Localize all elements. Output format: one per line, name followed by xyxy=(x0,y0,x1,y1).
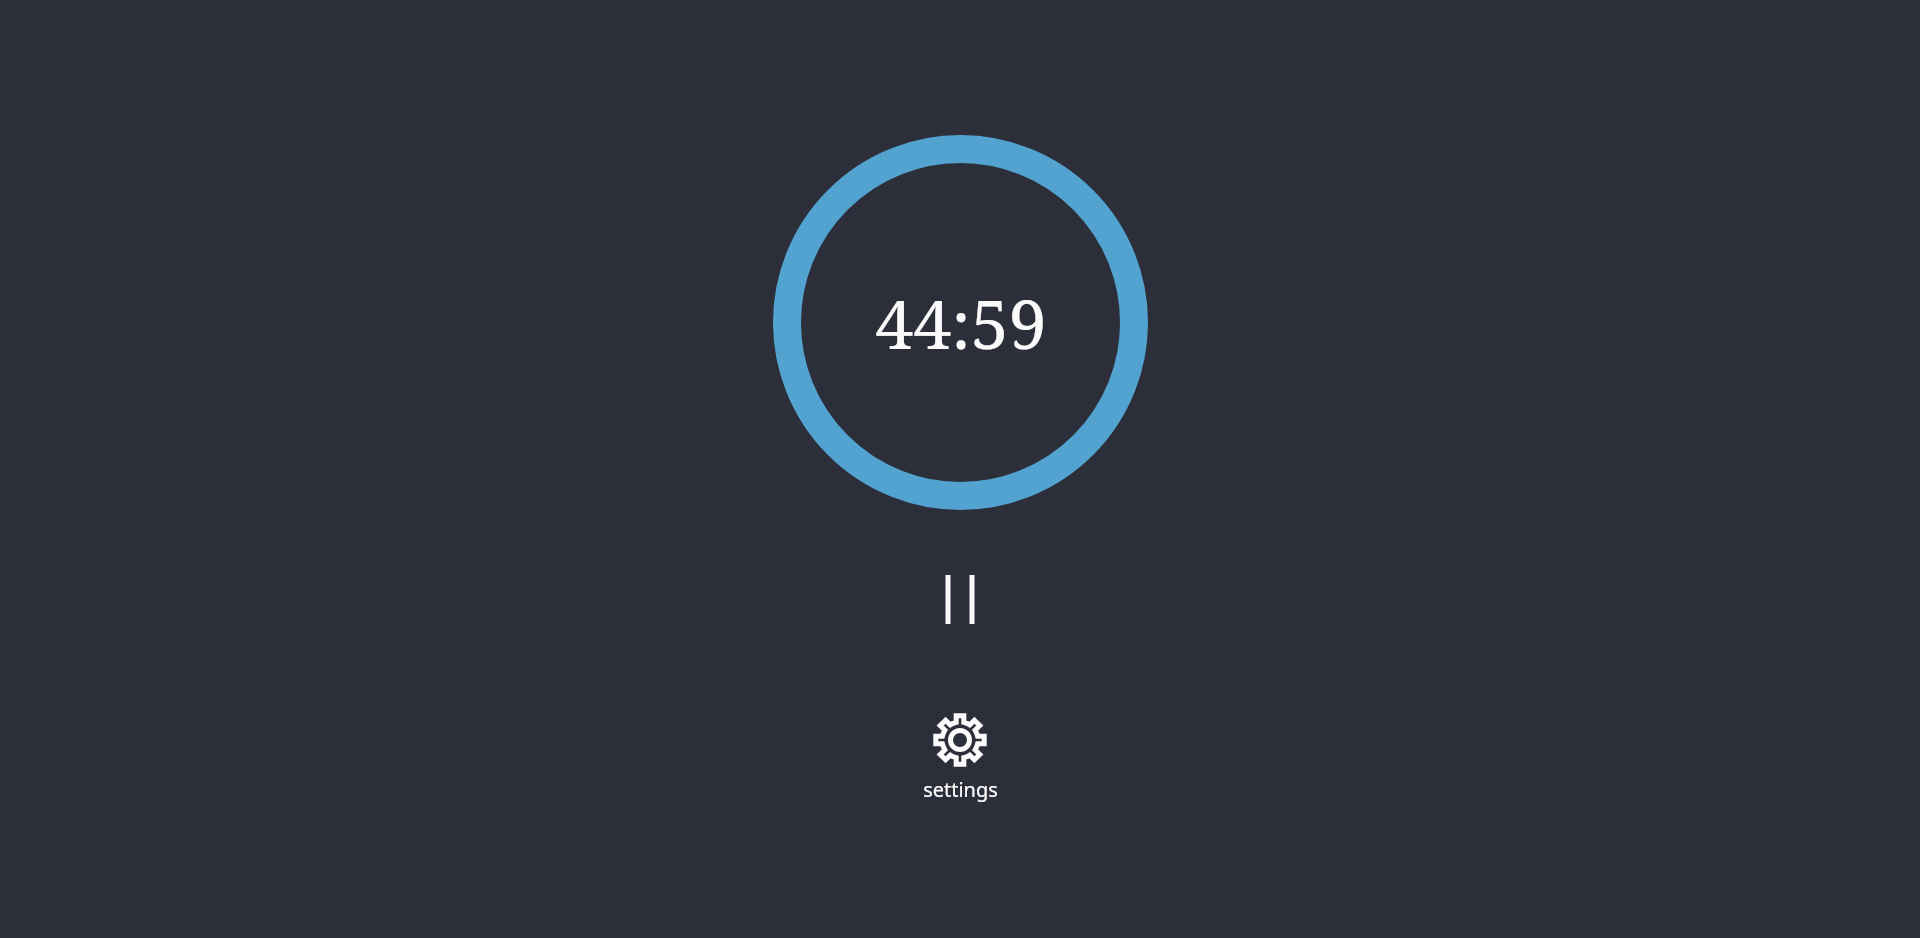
button[interactable]: Pause xyxy=(920,559,1000,639)
button[interactable]: 44:59 xyxy=(773,135,1148,510)
staticText: 44:59 xyxy=(875,276,1047,369)
button[interactable]: settings xyxy=(900,706,1020,803)
staticText: settings xyxy=(923,776,998,803)
